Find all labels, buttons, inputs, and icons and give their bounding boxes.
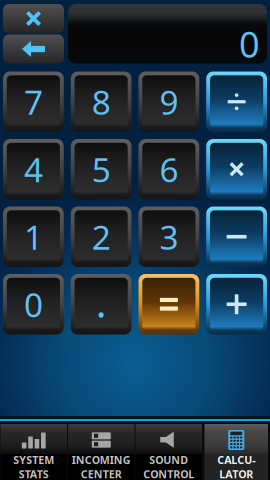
- staticText: LATOR: [219, 467, 253, 480]
- button[interactable]: Backspace: [3, 34, 64, 63]
- button[interactable]: Equals: [138, 274, 199, 334]
- staticText: 6: [159, 147, 178, 191]
- staticText: 0: [239, 20, 260, 68]
- button[interactable]: .: [71, 274, 132, 334]
- button[interactable]: 7: [3, 71, 64, 132]
- button[interactable]: SYSTEM: [0, 424, 67, 480]
- staticText: 4: [24, 147, 43, 191]
- button[interactable]: 4: [3, 139, 64, 199]
- button[interactable]: Multiply: [206, 139, 267, 199]
- staticText: 1: [24, 215, 43, 259]
- button[interactable]: 0: [3, 274, 64, 334]
- staticText: INCOMING: [72, 453, 131, 467]
- staticText: CALCU-: [217, 453, 255, 467]
- staticText: 3: [159, 215, 178, 259]
- button[interactable]: Divide: [206, 71, 267, 132]
- staticText: 8: [92, 80, 111, 124]
- button[interactable]: Clear: [3, 4, 64, 33]
- button[interactable]: 5: [71, 139, 132, 199]
- staticText: 2: [92, 215, 111, 259]
- button[interactable]: 1: [3, 206, 64, 267]
- staticText: 9: [159, 80, 178, 124]
- button[interactable]: 6: [138, 139, 199, 199]
- staticText: SOUND: [149, 453, 188, 467]
- staticText: CONTROL: [143, 467, 194, 480]
- button[interactable]: CALCU-: [202, 424, 270, 480]
- button[interactable]: Subtract: [206, 206, 267, 267]
- button[interactable]: 3: [138, 206, 199, 267]
- button[interactable]: 9: [138, 71, 199, 132]
- button[interactable]: Add: [206, 274, 267, 334]
- staticText: .: [96, 276, 107, 329]
- staticText: 7: [24, 80, 43, 124]
- button[interactable]: INCOMING: [67, 424, 135, 480]
- staticText: CENTER: [81, 467, 122, 480]
- button[interactable]: SOUND: [135, 424, 202, 480]
- staticText: STATS: [19, 467, 49, 480]
- button[interactable]: 2: [71, 206, 132, 267]
- staticText: 0: [24, 282, 43, 326]
- button[interactable]: 8: [71, 71, 132, 132]
- staticText: 5: [92, 147, 111, 191]
- staticText: SYSTEM: [13, 453, 54, 467]
